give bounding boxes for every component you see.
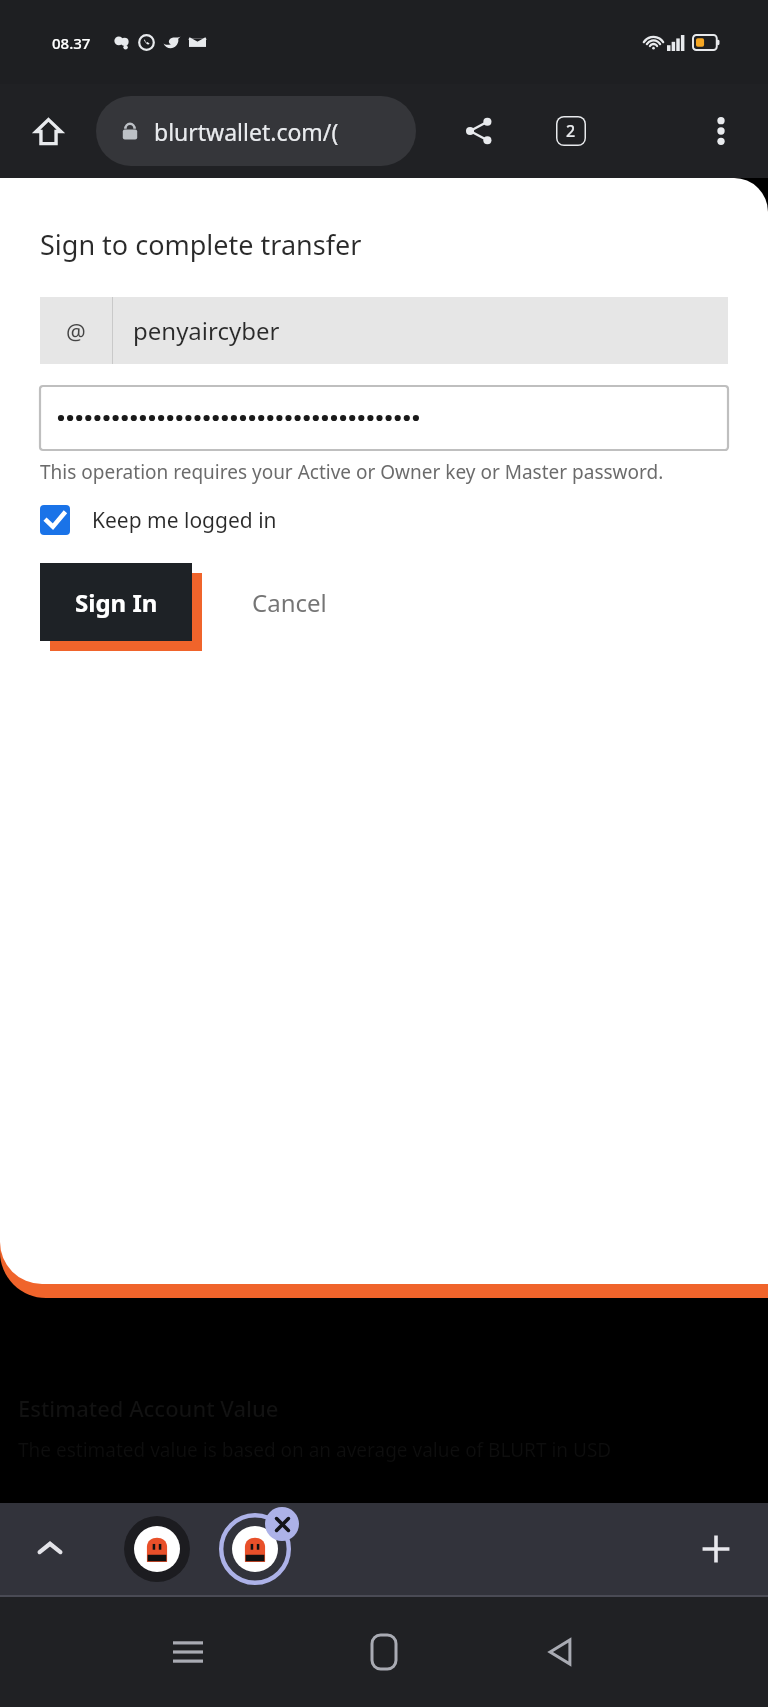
button[interactable]: Cancel	[252, 563, 392, 641]
button[interactable]: Share	[448, 100, 510, 162]
staticText: Sign In	[75, 586, 158, 619]
staticText: 08.37	[52, 33, 91, 53]
staticText: @	[66, 316, 86, 346]
button[interactable]: Back	[530, 1622, 590, 1682]
button[interactable]: Tabs: 2 open	[540, 100, 602, 162]
button[interactable]: Recent apps	[158, 1622, 218, 1682]
button[interactable]: New tab	[686, 1519, 746, 1579]
button[interactable]: Expand tab switcher	[22, 1521, 78, 1577]
staticText: 2	[566, 120, 576, 142]
staticText: The estimated value is based on an avera…	[18, 1437, 612, 1463]
button[interactable]: Home	[20, 103, 76, 159]
button[interactable]: @	[40, 297, 728, 364]
button[interactable]: blurtwallet.com/(	[96, 96, 416, 166]
staticText: This operation requires your Active or O…	[40, 459, 664, 485]
button[interactable]: Tab 1	[124, 1516, 190, 1582]
button[interactable]: Tab 2, active	[216, 1510, 294, 1588]
button[interactable]: Keep me logged in	[40, 505, 277, 535]
button[interactable]: Sign In	[40, 563, 192, 641]
button[interactable]: Home	[354, 1622, 414, 1682]
staticText: Keep me logged in	[92, 506, 277, 535]
staticText: Estimated Account Value	[18, 1393, 279, 1423]
staticText: blurtwallet.com/(	[154, 116, 339, 147]
staticText: penyaircyber	[133, 314, 280, 347]
button[interactable]	[40, 386, 728, 450]
staticText: Cancel	[252, 586, 327, 619]
button[interactable]: More options	[692, 102, 750, 160]
staticText: Sign to complete transfer	[40, 226, 362, 263]
button[interactable]: Close tab	[265, 1507, 299, 1541]
